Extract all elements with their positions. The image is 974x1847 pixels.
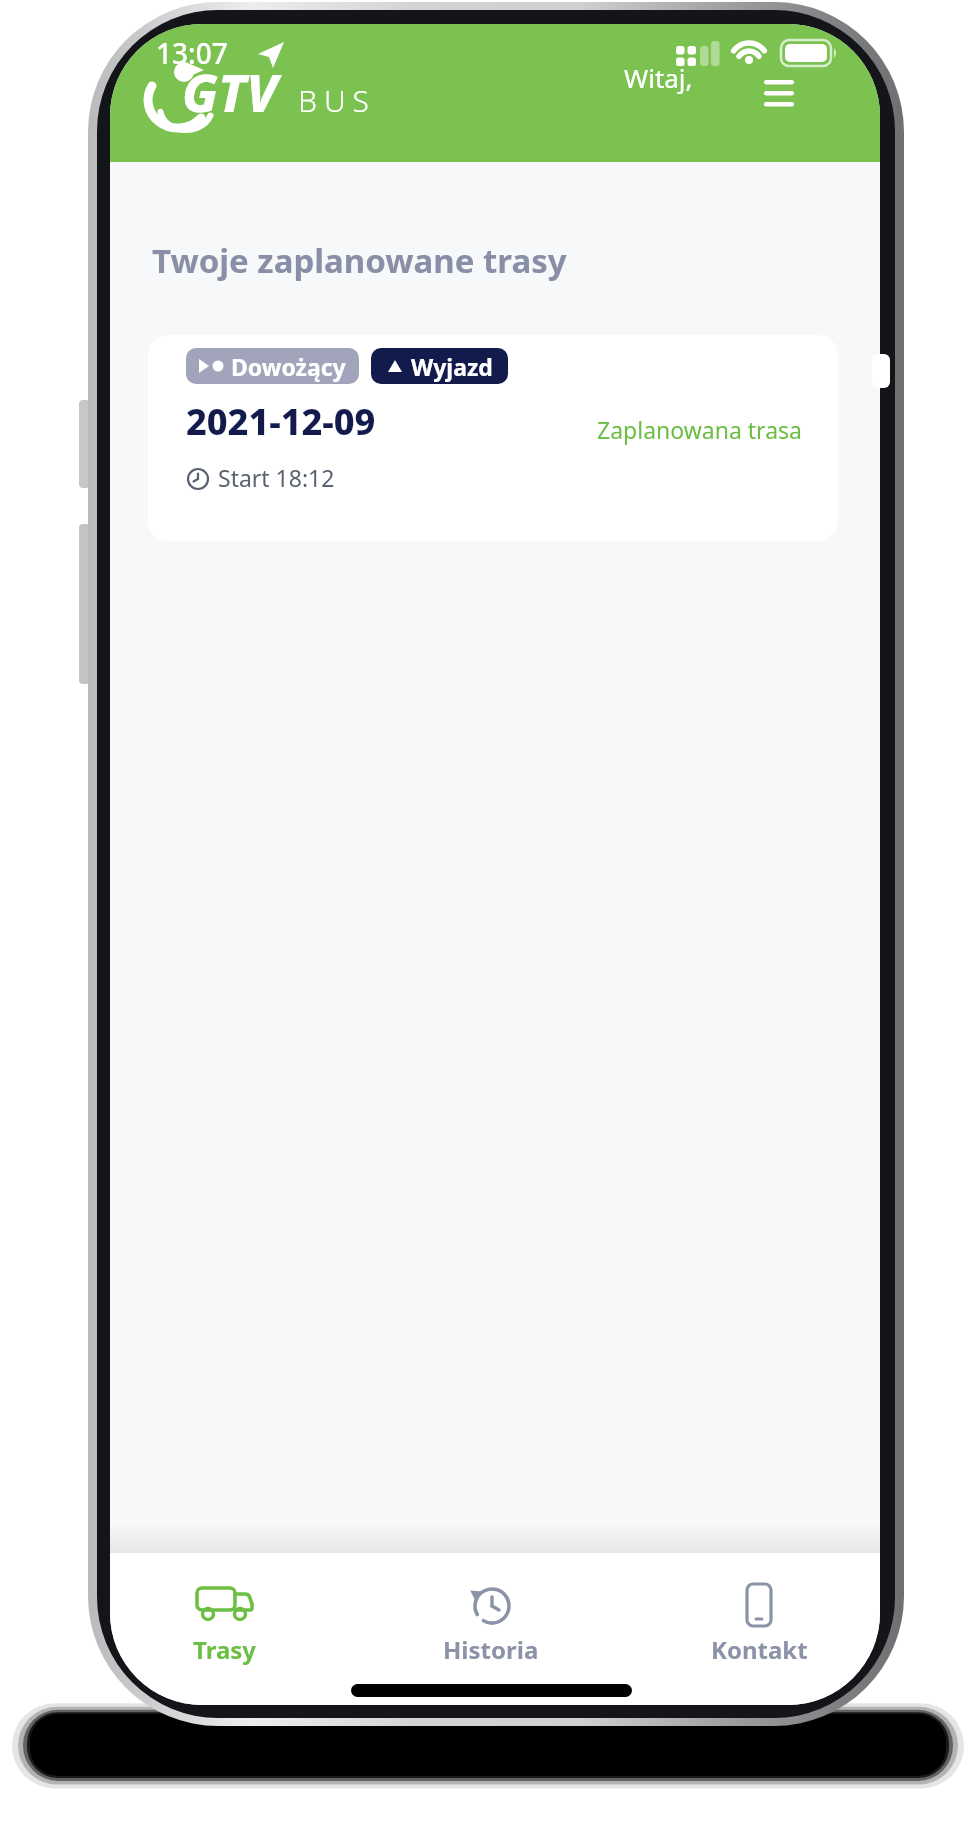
staticText: 2021-12-09 — [186, 397, 376, 446]
staticText: Historia — [443, 1633, 539, 1666]
button[interactable]: Trasy — [165, 1579, 285, 1666]
staticText: BUS — [298, 80, 376, 121]
button[interactable]: Historia — [431, 1579, 551, 1666]
staticText: Wyjazd — [411, 351, 493, 382]
staticText: Start 18:12 — [218, 462, 335, 493]
button[interactable]: Dowożący — [186, 348, 359, 384]
staticText: Twoje zaplanowane trasy — [152, 238, 567, 283]
staticText: GTV — [182, 56, 278, 127]
button[interactable] — [754, 70, 804, 114]
staticText: Dowożący — [231, 351, 346, 382]
staticText: Trasy — [193, 1633, 257, 1666]
staticText: Witaj, — [624, 60, 693, 95]
button[interactable]: Wyjazd — [371, 348, 508, 384]
button[interactable]: Dowożący — [148, 335, 838, 541]
button[interactable]: Kontakt — [699, 1579, 819, 1666]
staticText: Kontakt — [711, 1633, 808, 1666]
staticText: 13:07 — [156, 34, 228, 72]
staticText: Zaplanowana trasa — [597, 414, 802, 445]
